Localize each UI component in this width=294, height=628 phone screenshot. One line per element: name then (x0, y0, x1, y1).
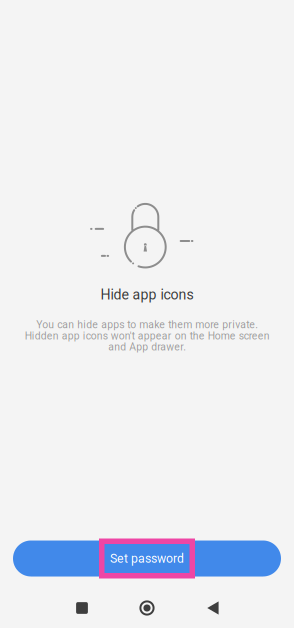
staticText: Hide app icons (100, 286, 193, 303)
button[interactable]: Back (189, 593, 237, 623)
staticText: Set password (110, 551, 184, 566)
button[interactable]: Recent apps (58, 593, 106, 623)
button[interactable]: Set password (13, 540, 281, 576)
staticText: You can hide apps to make them more priv… (24, 319, 269, 353)
button[interactable]: Home (123, 593, 171, 623)
